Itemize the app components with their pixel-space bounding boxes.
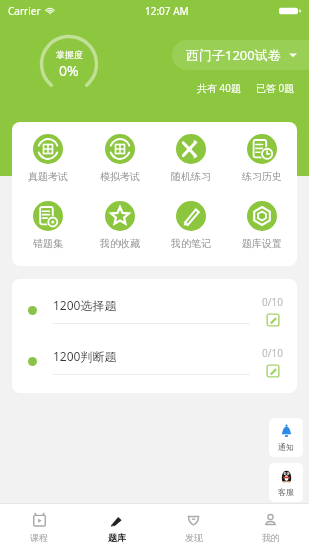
staticText: 随机练习 (171, 170, 211, 183)
button[interactable]: 随机练习 (155, 128, 226, 189)
button[interactable]: 西门子1200试卷 (172, 40, 309, 70)
staticText: 12:07 AM (145, 4, 189, 18)
staticText: 我的 (262, 532, 280, 543)
staticText: 0/10 (262, 346, 283, 360)
staticText: 0/10 (262, 295, 283, 309)
button[interactable]: 题库 (78, 504, 155, 550)
button[interactable]: 1200判断题 (12, 336, 297, 387)
staticText: 1200选择题 (53, 297, 117, 313)
button[interactable]: 我的笔记 (155, 195, 226, 256)
staticText: 客服 (278, 487, 294, 497)
staticText: 0% (59, 61, 79, 80)
staticText: 西门子1200试卷 (186, 46, 281, 64)
button[interactable]: 通知 (269, 418, 303, 457)
button[interactable]: 真题考试 (12, 128, 84, 189)
staticText: 共有 40题 (197, 81, 242, 95)
staticText: 真题考试 (28, 170, 68, 183)
staticText: 练习历史 (242, 170, 282, 183)
button[interactable]: 发现 (155, 504, 232, 550)
staticText: 模拟考试 (100, 170, 140, 183)
button[interactable]: 题库设置 (226, 195, 297, 256)
staticText: 课程 (30, 532, 48, 543)
staticText: 发现 (185, 532, 203, 543)
button[interactable]: 客服 (269, 463, 303, 502)
staticText: 1200判断题 (53, 348, 117, 364)
button[interactable]: 我的 (232, 504, 309, 550)
staticText: 错题集 (33, 237, 63, 250)
button[interactable]: 练习历史 (226, 128, 297, 189)
button[interactable]: 课程 (0, 504, 78, 550)
other: Edit (266, 364, 280, 378)
button[interactable]: 1200选择题 (12, 285, 297, 336)
staticText: 我的笔记 (171, 237, 211, 250)
staticText: 我的收藏 (100, 237, 140, 250)
staticText: 题库设置 (242, 237, 282, 250)
button[interactable]: 模拟考试 (84, 128, 155, 189)
staticText: 掌握度 (56, 49, 83, 60)
button[interactable]: 我的收藏 (84, 195, 155, 256)
staticText: 已答 0题 (256, 81, 295, 95)
staticText: 通知 (278, 442, 294, 452)
staticText: Carrier (8, 4, 41, 18)
button[interactable]: 错题集 (12, 195, 84, 256)
staticText: 题库 (108, 532, 126, 543)
other: Edit (266, 313, 280, 327)
